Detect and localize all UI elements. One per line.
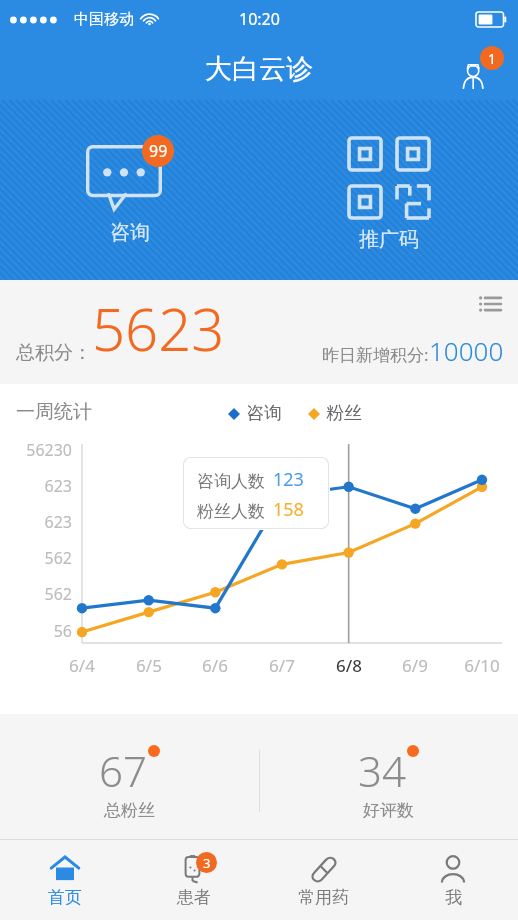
staticText: 一周统计	[16, 400, 92, 424]
staticText: 562	[0, 583, 72, 605]
staticText: 562	[0, 547, 72, 569]
staticText: 123	[273, 467, 304, 492]
staticText: 56230	[0, 439, 72, 461]
staticText: 10000	[429, 333, 504, 368]
staticText: 158	[273, 497, 304, 522]
staticText: 623	[0, 511, 72, 533]
staticText: 粉丝	[326, 402, 362, 425]
staticText: 推广码	[359, 227, 419, 252]
staticText: 67	[99, 742, 147, 799]
staticText: 常用药	[298, 887, 349, 908]
button[interactable]: Points detail list	[472, 286, 508, 322]
staticText: 粉丝人数	[197, 501, 265, 522]
staticText: 首页	[48, 887, 82, 908]
staticText: 总粉丝	[104, 800, 155, 821]
staticText: 中国移动	[74, 10, 134, 29]
staticText: 咨询人数	[197, 471, 265, 492]
staticText: 大白云诊	[205, 52, 313, 86]
staticText: 34	[358, 742, 406, 799]
staticText: 3	[203, 854, 211, 872]
staticText: 5623	[92, 289, 225, 368]
staticText: 6/4	[56, 654, 108, 677]
staticText: 623	[0, 475, 72, 497]
staticText: 6/9	[389, 654, 441, 677]
staticText: 咨询	[246, 402, 282, 425]
button[interactable]: 常用药	[258, 840, 388, 920]
staticText: 咨询	[110, 220, 150, 245]
staticText: 好评数	[363, 800, 414, 821]
button[interactable]: 34	[259, 726, 518, 836]
staticText: 56	[0, 620, 72, 642]
button[interactable]: 我	[388, 840, 518, 920]
staticText: 昨日新增积分:	[322, 343, 429, 366]
button[interactable]: 67	[0, 726, 259, 836]
staticText: 1	[488, 49, 497, 68]
staticText: 99	[149, 140, 168, 162]
staticText: 6/5	[123, 654, 175, 677]
staticText: 6/10	[456, 654, 508, 677]
button[interactable]: 3	[129, 840, 258, 920]
staticText: 10:20	[239, 8, 280, 30]
button[interactable]: 推广码	[259, 100, 518, 280]
staticText: 患者	[177, 887, 211, 908]
staticText: 我	[445, 887, 462, 908]
staticText: 6/7	[256, 654, 308, 677]
staticText: 6/6	[189, 654, 241, 677]
button[interactable]: Doctor profile, 1 notification	[458, 46, 504, 92]
button[interactable]: 首页	[0, 840, 129, 920]
button[interactable]: 99	[0, 100, 259, 280]
staticText: 总积分：	[16, 341, 92, 365]
staticText: 6/8	[323, 654, 375, 677]
